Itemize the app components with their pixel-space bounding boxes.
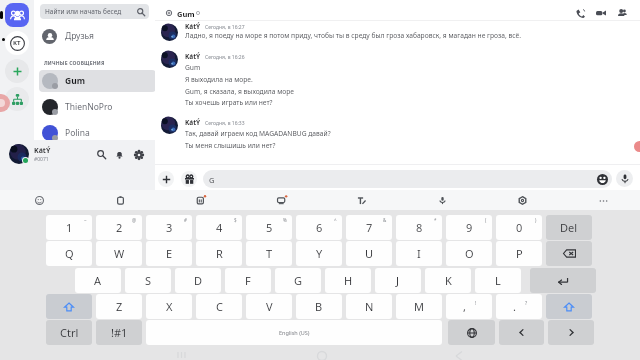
button[interactable]: Explore Public Servers bbox=[5, 87, 29, 111]
button[interactable]: V bbox=[246, 294, 292, 319]
button[interactable]: E bbox=[146, 241, 192, 266]
button[interactable]: C bbox=[196, 294, 242, 319]
button[interactable]: P bbox=[496, 241, 542, 266]
staticText: @ bbox=[132, 217, 137, 223]
button[interactable]: 6 bbox=[296, 215, 342, 240]
button[interactable]: 9 bbox=[446, 215, 492, 240]
button[interactable]: Add a Server bbox=[5, 59, 29, 83]
button[interactable]: U bbox=[346, 241, 392, 266]
button[interactable]: N bbox=[346, 294, 392, 319]
button[interactable]: Settings bbox=[513, 191, 531, 209]
button[interactable]: , bbox=[446, 294, 492, 319]
button[interactable]: 5 bbox=[246, 215, 292, 240]
staticText: KátÝ bbox=[185, 22, 201, 31]
staticText: S bbox=[145, 273, 152, 288]
button[interactable]: 0 bbox=[496, 215, 542, 240]
button[interactable]: Cursor right bbox=[548, 320, 594, 345]
button[interactable]: G bbox=[275, 268, 321, 293]
button[interactable]: Switch language bbox=[448, 320, 495, 345]
staticText: Ладно, я поеду на море я потом приду, чт… bbox=[185, 31, 522, 40]
button[interactable]: ThienNoPro bbox=[39, 96, 156, 118]
button[interactable]: T bbox=[246, 241, 292, 266]
button[interactable]: Gum bbox=[39, 70, 156, 92]
staticText: 3 bbox=[166, 220, 173, 235]
button[interactable]: X bbox=[146, 294, 192, 319]
button[interactable]: Symbols bbox=[96, 320, 142, 345]
button[interactable]: Shift bbox=[546, 294, 592, 319]
staticText: V bbox=[266, 299, 273, 314]
staticText: L bbox=[495, 273, 501, 288]
button[interactable]: Shift bbox=[46, 294, 92, 319]
staticText: K bbox=[445, 273, 452, 288]
staticText: Gum, я сказала, я выходила море bbox=[185, 87, 295, 96]
staticText: M bbox=[414, 299, 424, 314]
button[interactable]: G bbox=[203, 170, 612, 188]
button[interactable]: Polina bbox=[39, 122, 156, 144]
button[interactable]: GIF bbox=[272, 191, 290, 209]
staticText: G bbox=[294, 273, 303, 288]
button[interactable]: 8 bbox=[396, 215, 442, 240]
button[interactable]: More bbox=[594, 191, 612, 209]
staticText: . bbox=[513, 299, 516, 314]
button[interactable]: 4 bbox=[196, 215, 242, 240]
button[interactable]: Clipboard bbox=[111, 191, 129, 209]
staticText: English (US) bbox=[279, 329, 310, 336]
button[interactable]: D bbox=[175, 268, 221, 293]
button[interactable]: Space bbox=[146, 320, 442, 345]
button[interactable]: R bbox=[196, 241, 242, 266]
button[interactable]: Z bbox=[96, 294, 142, 319]
button[interactable]: Voice Message bbox=[616, 170, 633, 187]
button[interactable]: O bbox=[446, 241, 492, 266]
button[interactable]: K bbox=[425, 268, 471, 293]
button[interactable]: User profile KátÝ bbox=[5, 142, 85, 168]
button[interactable]: Del bbox=[546, 215, 592, 240]
button[interactable]: Q bbox=[46, 241, 92, 266]
button[interactable]: Send a Gift bbox=[181, 171, 197, 187]
button[interactable]: I bbox=[396, 241, 442, 266]
button[interactable]: Backspace bbox=[546, 241, 592, 266]
button[interactable]: Enter bbox=[530, 268, 596, 293]
button[interactable]: L bbox=[475, 268, 521, 293]
staticText: ЛИЧНЫЕ СООБЩЕНИЯ bbox=[44, 60, 105, 67]
button[interactable]: Start Voice Call bbox=[574, 7, 586, 19]
button[interactable]: Notifications bbox=[113, 148, 126, 161]
button[interactable]: Upload a File bbox=[158, 171, 174, 187]
button[interactable]: Search bbox=[95, 148, 108, 161]
button[interactable]: Start Video Call bbox=[595, 7, 607, 19]
button[interactable]: Direct Messages bbox=[5, 3, 29, 27]
button[interactable]: F bbox=[225, 268, 271, 293]
button[interactable]: Server KT bbox=[5, 31, 29, 55]
button[interactable]: 1 bbox=[46, 215, 92, 240]
button[interactable]: Y bbox=[296, 241, 342, 266]
button[interactable]: Handwriting bbox=[352, 191, 370, 209]
button[interactable]: Stickers bbox=[191, 191, 209, 209]
staticText: !#1 bbox=[111, 325, 128, 340]
staticText: 5 bbox=[266, 220, 273, 235]
staticText: , bbox=[463, 299, 466, 314]
button[interactable]: W bbox=[96, 241, 142, 266]
button[interactable]: Emoji bbox=[30, 191, 48, 209]
button[interactable]: A bbox=[75, 268, 121, 293]
button[interactable]: . bbox=[496, 294, 542, 319]
button[interactable]: Найти или начать бесед bbox=[40, 4, 149, 19]
button[interactable]: Ctrl bbox=[46, 320, 92, 345]
button[interactable]: 2 bbox=[96, 215, 142, 240]
button[interactable]: S bbox=[125, 268, 171, 293]
button[interactable]: 3 bbox=[146, 215, 192, 240]
button[interactable]: Add Friends to DM bbox=[616, 7, 628, 19]
button[interactable]: J bbox=[375, 268, 421, 293]
button[interactable]: Cursor left bbox=[499, 320, 544, 345]
staticText: * bbox=[434, 217, 437, 223]
button[interactable]: H bbox=[325, 268, 371, 293]
staticText: H bbox=[344, 273, 353, 288]
button[interactable]: Voice input bbox=[433, 191, 451, 209]
button[interactable]: M bbox=[396, 294, 442, 319]
staticText: A bbox=[94, 273, 102, 288]
staticText: 2 bbox=[116, 220, 123, 235]
button[interactable]: B bbox=[296, 294, 342, 319]
button[interactable]: Settings bbox=[132, 148, 145, 161]
button[interactable]: 7 bbox=[346, 215, 392, 240]
staticText: 6 bbox=[316, 220, 323, 235]
staticText: ^ bbox=[334, 217, 337, 223]
button[interactable]: Друзья bbox=[39, 26, 150, 46]
